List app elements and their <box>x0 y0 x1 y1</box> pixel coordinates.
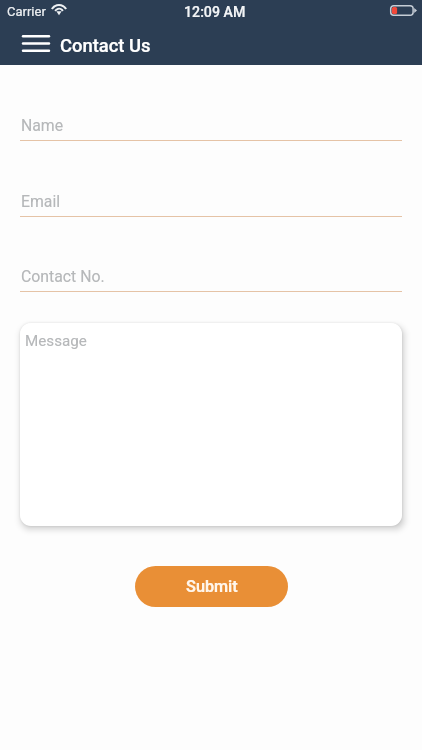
staticText: Name <box>21 116 64 135</box>
button[interactable]: Open navigation menu <box>10 24 58 65</box>
staticText: Contact No. <box>21 267 105 286</box>
staticText: Message <box>25 332 87 350</box>
button[interactable]: Submit <box>135 566 288 607</box>
staticText: 12:09 AM <box>184 4 246 21</box>
button[interactable]: Message <box>20 323 402 526</box>
staticText: Carrier <box>7 4 46 19</box>
staticText: Email <box>21 192 61 211</box>
button[interactable]: Contact No. <box>20 267 402 292</box>
staticText: Submit <box>186 577 238 596</box>
button[interactable]: Email <box>20 192 402 217</box>
button[interactable]: Name <box>20 116 402 141</box>
staticText: Contact Us <box>60 35 151 57</box>
